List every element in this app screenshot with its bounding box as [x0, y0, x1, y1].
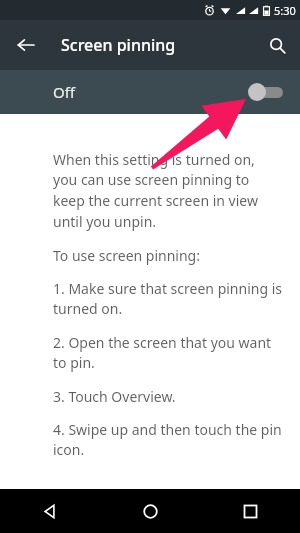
staticText: 3. Touch Overview. [53, 387, 176, 406]
staticText: To use screen pinning: [53, 246, 200, 265]
staticText: When this setting is turned on, you can … [53, 150, 282, 232]
button[interactable]: Back [0, 489, 100, 533]
button[interactable]: Home [100, 489, 200, 533]
staticText: 4. Swipe up and then touch the pin icon. [53, 420, 282, 460]
staticText: 5:30 [274, 3, 296, 18]
other: Toggle screen pinning [248, 81, 284, 103]
button[interactable]: Overview [200, 489, 300, 533]
button[interactable]: Back [8, 27, 44, 63]
staticText: Screen pinning [61, 34, 176, 56]
staticText: 1. Make sure that screen pinning is turn… [53, 279, 282, 319]
button[interactable]: Search [259, 27, 295, 63]
staticText: Off [53, 82, 76, 102]
staticText: 2. Open the screen that you want to pin. [53, 333, 282, 373]
button[interactable]: Off [0, 70, 300, 114]
